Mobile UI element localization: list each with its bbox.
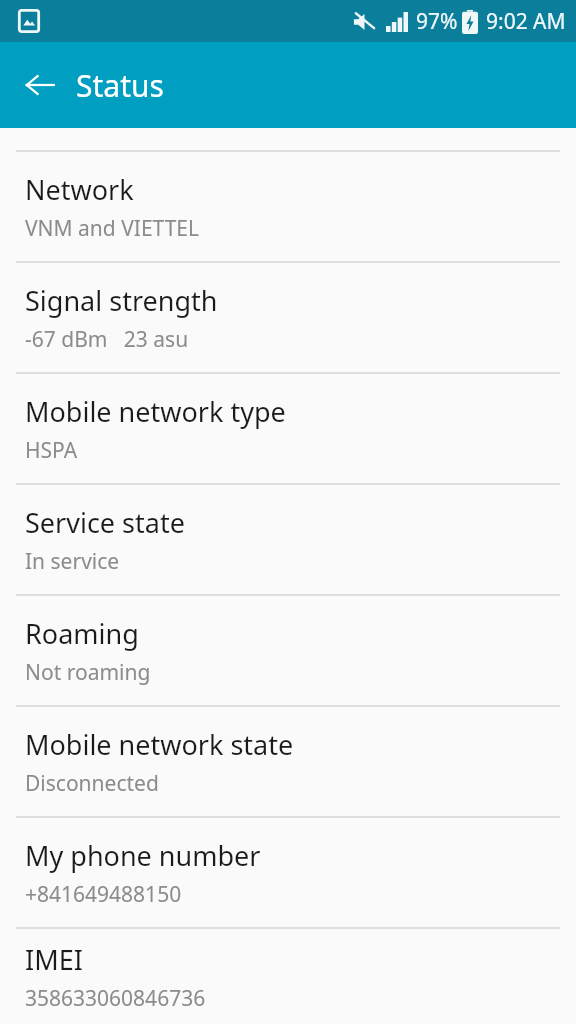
staticText: 9:02 AM bbox=[486, 7, 566, 36]
staticText: -67 dBm 23 asu bbox=[25, 325, 189, 354]
staticText: Status bbox=[76, 65, 164, 106]
button[interactable]: Back bbox=[14, 59, 66, 111]
staticText: Signal strength bbox=[25, 282, 218, 319]
button[interactable]: My phone number bbox=[0, 818, 576, 927]
button[interactable]: Service state bbox=[0, 485, 576, 594]
staticText: In service bbox=[25, 547, 120, 576]
button[interactable]: Signal strength bbox=[0, 263, 576, 372]
staticText: +841649488150 bbox=[25, 880, 182, 909]
staticText: 97% bbox=[416, 7, 458, 36]
staticText: Mobile network type bbox=[25, 393, 286, 430]
staticText: Disconnected bbox=[25, 769, 159, 798]
staticText: 358633060846736 bbox=[25, 984, 206, 1013]
staticText: My phone number bbox=[25, 837, 261, 874]
button[interactable]: Mobile network type bbox=[0, 374, 576, 483]
staticText: Service state bbox=[25, 504, 185, 541]
button[interactable]: Mobile network state bbox=[0, 707, 576, 816]
staticText: Not roaming bbox=[25, 658, 151, 687]
staticText: Roaming bbox=[25, 615, 139, 652]
button[interactable]: Network bbox=[0, 152, 576, 261]
button[interactable]: IMEI bbox=[0, 929, 576, 1024]
staticText: Network bbox=[25, 171, 134, 208]
staticText: Mobile network state bbox=[25, 726, 294, 763]
staticText: IMEI bbox=[25, 941, 83, 978]
staticText: HSPA bbox=[25, 436, 78, 465]
button[interactable]: Roaming bbox=[0, 596, 576, 705]
staticText: VNM and VIETTEL bbox=[25, 214, 200, 243]
